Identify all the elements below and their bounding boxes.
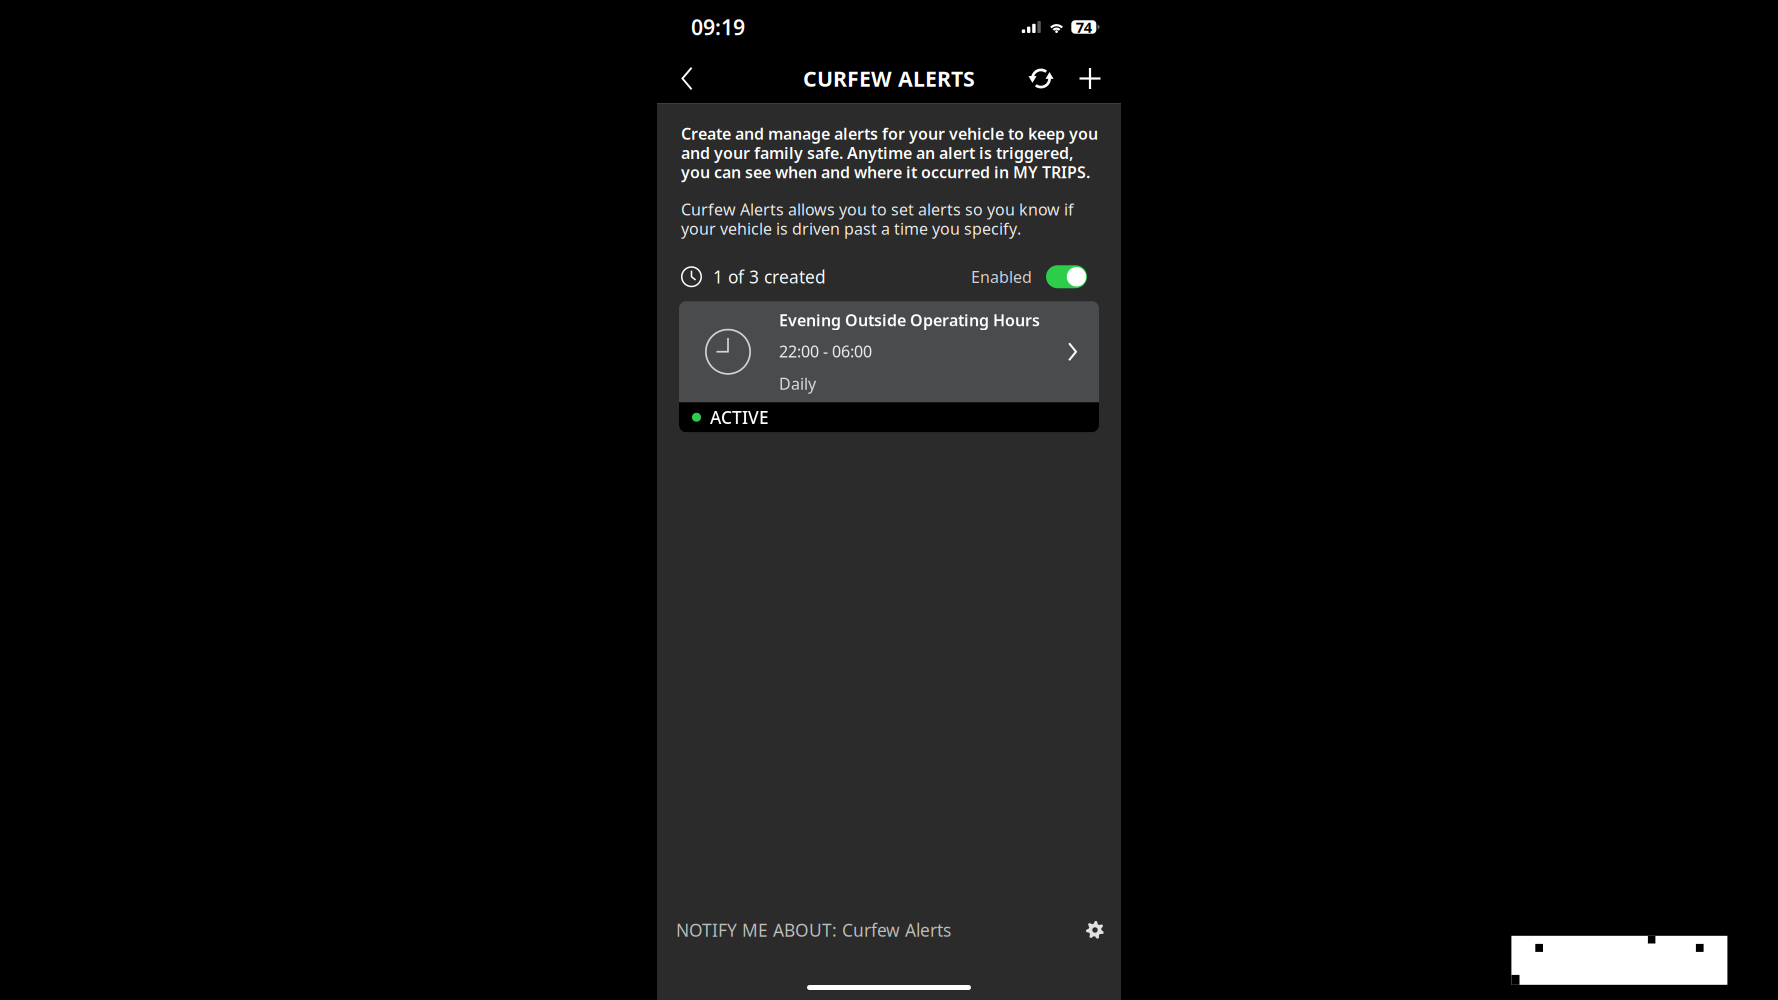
staticText: Create and manage alerts for your vehicl…: [681, 123, 1098, 183]
staticText: Curfew Alerts allows you to set alerts s…: [681, 199, 1074, 239]
staticText: 22:00 - 06:00: [779, 341, 872, 362]
button[interactable]: Enabled: [1046, 265, 1087, 288]
button[interactable]: Refresh: [1018, 56, 1064, 100]
staticText: ACTIVE: [710, 406, 769, 429]
staticText: Enabled: [971, 266, 1032, 287]
staticText: NOTIFY ME ABOUT: Curfew Alerts: [676, 918, 951, 941]
staticText: CURFEW ALERTS: [803, 64, 975, 93]
button[interactable]: Notification settings: [1077, 912, 1113, 948]
button[interactable]: Back: [666, 56, 708, 100]
staticText: 1 of 3 created: [713, 265, 826, 288]
staticText: Daily: [779, 373, 816, 394]
staticText: Evening Outside Operating Hours: [779, 309, 1040, 331]
button[interactable]: Evening Outside Operating Hours: [679, 301, 1099, 432]
staticText: 74: [1076, 17, 1092, 37]
staticText: 09:19: [691, 13, 745, 41]
button[interactable]: Add alert: [1064, 56, 1116, 100]
